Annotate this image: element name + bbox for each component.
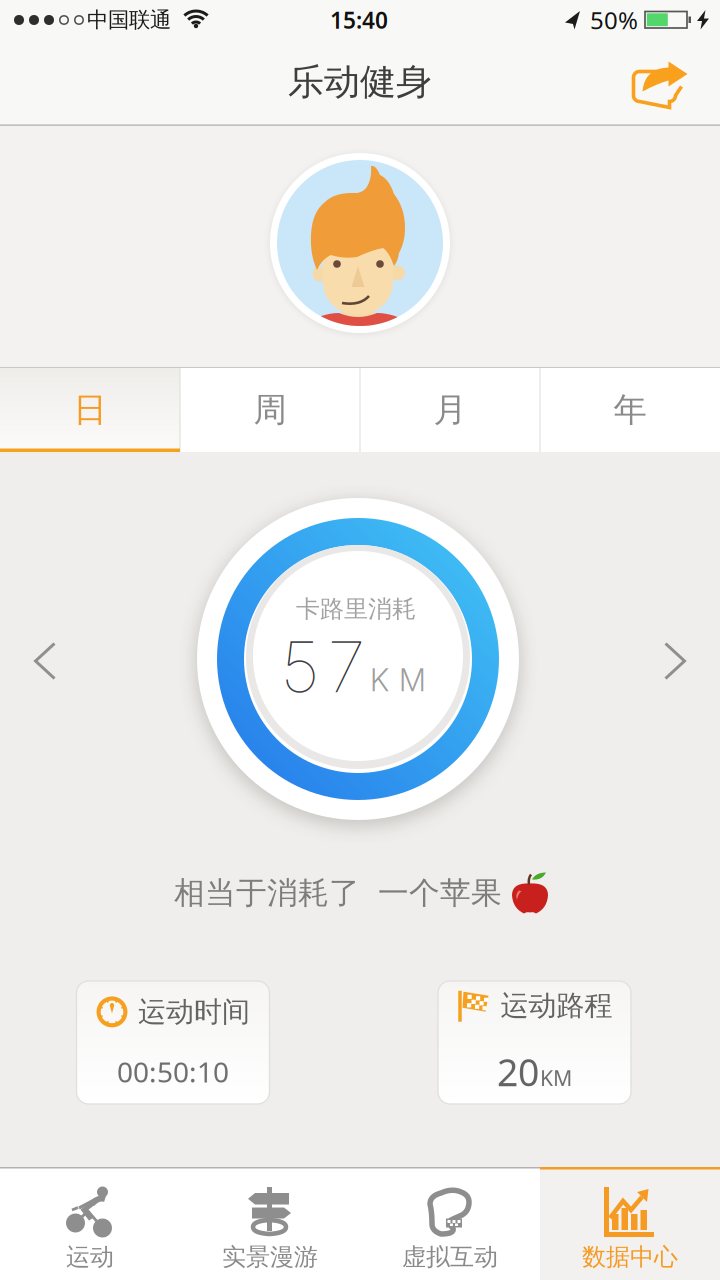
staticText: 运动路程 <box>500 988 612 1023</box>
staticText: 虚拟互动 <box>402 1242 498 1272</box>
button[interactable]: Share <box>625 56 695 114</box>
button[interactable]: 周 <box>180 368 360 452</box>
staticText: 中国联通 <box>87 7 171 33</box>
button[interactable]: 虚拟互动 <box>360 1167 540 1280</box>
staticText: 15:40 <box>330 5 388 35</box>
staticText: 乐动健身 <box>288 60 432 104</box>
button[interactable]: 运动 <box>0 1167 180 1280</box>
button[interactable]: 日 <box>0 368 180 452</box>
staticText: 57 <box>280 625 365 709</box>
staticText: 相当于消耗了 一个苹果 <box>174 874 502 912</box>
staticText: KM <box>370 661 426 698</box>
staticText: 数据中心 <box>582 1242 678 1272</box>
staticText: 运动时间 <box>138 995 250 1029</box>
staticText: 运动 <box>66 1242 114 1272</box>
staticText: 50% <box>590 4 638 36</box>
staticText: 20 <box>497 1047 539 1096</box>
staticText: 实景漫游 <box>222 1242 318 1272</box>
staticText: 日 <box>73 389 106 430</box>
button[interactable]: 月 <box>360 368 540 452</box>
staticText: 周 <box>253 389 286 430</box>
button[interactable]: 年 <box>540 368 720 452</box>
button[interactable]: Next <box>650 631 700 691</box>
staticText: KM <box>540 1064 572 1092</box>
button[interactable]: 实景漫游 <box>180 1167 360 1280</box>
button[interactable]: Previous <box>20 631 70 691</box>
staticText: 月 <box>433 389 466 430</box>
staticText: 卡路里消耗 <box>296 594 416 624</box>
button[interactable]: 数据中心 <box>540 1167 720 1280</box>
staticText: 年 <box>613 389 646 430</box>
staticText: 00:50:10 <box>117 1053 229 1090</box>
